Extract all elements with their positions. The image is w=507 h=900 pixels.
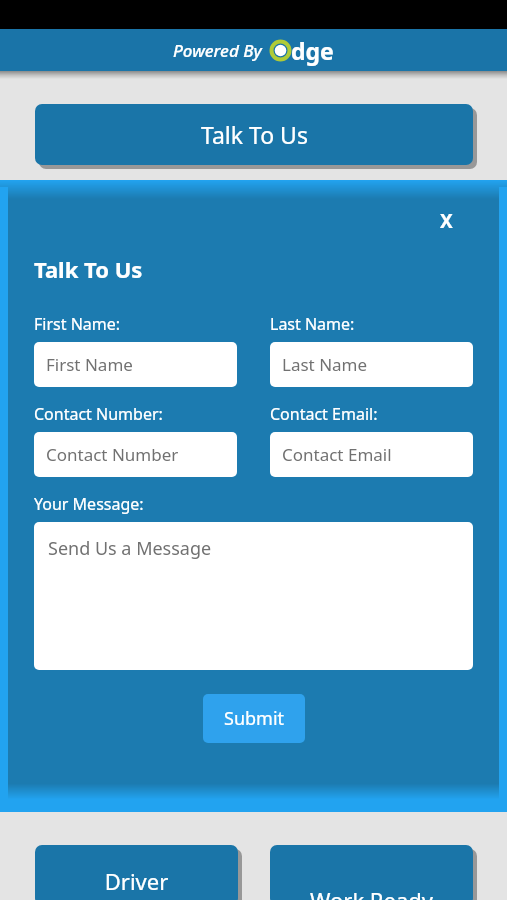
staticText: Contact Number [46,443,179,466]
staticText: First Name: [34,313,121,335]
staticText: Driver [35,866,238,896]
button[interactable]: Contact Email [270,432,473,477]
button[interactable]: Last Name [270,342,473,387]
staticText: Work Ready [270,885,473,900]
button[interactable]: Work Ready [270,845,473,900]
button[interactable]: Send Us a Message [34,522,473,670]
staticText: Talk To Us [201,119,308,150]
button[interactable]: Contact Number [34,432,237,477]
staticText: Contact Email [282,443,392,466]
staticText: Last Name: [270,313,355,335]
button[interactable]: Driver [35,845,238,900]
button[interactable]: First Name [34,342,237,387]
button[interactable]: Close [425,200,467,242]
staticText: Send Us a Message [48,536,212,561]
staticText: First Name [46,353,133,376]
staticText: dge [291,35,334,66]
button[interactable]: Talk To Us [35,104,473,165]
staticText: Talk To Us [34,254,143,284]
staticText: Submit [224,706,285,731]
staticText: Last Name [282,353,368,376]
button[interactable]: Submit [203,694,305,743]
staticText: X [440,208,453,234]
staticText: Your Message: [34,493,144,515]
staticText: Contact Number: [34,403,163,425]
staticText: Contact Email: [270,403,378,425]
staticText: Powered By [173,39,262,62]
